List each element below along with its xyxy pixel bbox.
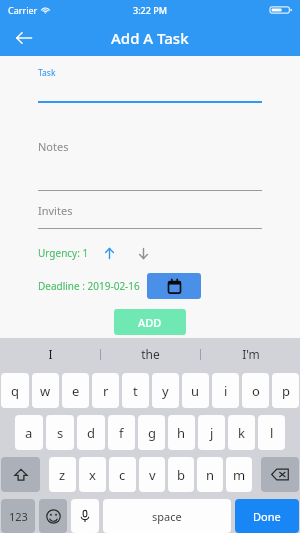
- staticText: Invites: [38, 203, 73, 218]
- staticText: Task: [38, 67, 56, 79]
- staticText: 123: [9, 509, 28, 524]
- staticText: f: [119, 424, 124, 442]
- staticText: I: [48, 346, 53, 362]
- staticText: i: [224, 382, 228, 400]
- button[interactable]: r: [92, 373, 119, 408]
- staticText: g: [148, 424, 156, 442]
- button[interactable]: n: [197, 457, 223, 492]
- button[interactable]: Back: [6, 20, 42, 56]
- staticText: p: [282, 382, 290, 400]
- button[interactable]: a: [15, 415, 43, 450]
- button[interactable]: 123: [1, 499, 35, 533]
- staticText: Add A Task: [111, 28, 189, 48]
- button[interactable]: I'm: [201, 338, 300, 370]
- staticText: Carrier: [8, 4, 38, 16]
- staticText: w: [40, 382, 51, 400]
- staticText: Deadline : 2019-02-16: [38, 279, 140, 293]
- button[interactable]: g: [138, 415, 165, 450]
- button[interactable]: Voice input: [71, 499, 99, 533]
- staticText: h: [177, 424, 186, 442]
- button[interactable]: s: [46, 415, 74, 450]
- staticText: z: [59, 466, 66, 484]
- button[interactable]: t: [122, 373, 149, 408]
- button[interactable]: j: [198, 415, 225, 450]
- staticText: o: [252, 382, 260, 400]
- button[interactable]: ADD: [114, 309, 186, 335]
- button[interactable]: Backspace: [261, 457, 299, 492]
- button[interactable]: m: [226, 457, 252, 492]
- button[interactable]: Decrease urgency: [133, 243, 153, 263]
- button[interactable]: f: [108, 415, 135, 450]
- button[interactable]: y: [152, 373, 179, 408]
- staticText: x: [89, 466, 96, 484]
- staticText: ADD: [138, 315, 162, 330]
- button[interactable]: Emoji: [39, 499, 67, 533]
- staticText: Notes: [38, 139, 69, 154]
- button[interactable]: c: [109, 457, 136, 492]
- button[interactable]: p: [272, 373, 299, 408]
- staticText: n: [206, 466, 215, 484]
- staticText: k: [238, 424, 245, 442]
- staticText: Urgency: 1: [38, 246, 89, 260]
- staticText: a: [25, 424, 33, 442]
- button[interactable]: Done: [235, 499, 299, 533]
- button[interactable]: w: [32, 373, 59, 408]
- button[interactable]: space: [103, 499, 231, 533]
- staticText: d: [87, 424, 95, 442]
- button[interactable]: Increase urgency: [99, 243, 119, 263]
- button[interactable]: I: [0, 338, 100, 370]
- staticText: c: [119, 466, 126, 484]
- staticText: the: [141, 346, 160, 362]
- staticText: v: [149, 466, 156, 484]
- button[interactable]: d: [77, 415, 105, 450]
- staticText: q: [11, 382, 19, 400]
- staticText: y: [162, 382, 169, 400]
- staticText: b: [177, 466, 185, 484]
- button[interactable]: h: [168, 415, 195, 450]
- button[interactable]: Pick deadline date: [147, 273, 201, 299]
- button[interactable]: Shift: [1, 457, 40, 492]
- button[interactable]: e: [62, 373, 89, 408]
- button[interactable]: o: [242, 373, 269, 408]
- staticText: j: [210, 424, 214, 442]
- button[interactable]: i: [212, 373, 239, 408]
- staticText: m: [233, 466, 246, 484]
- button[interactable]: v: [139, 457, 165, 492]
- staticText: s: [57, 424, 64, 442]
- button[interactable]: the: [101, 338, 200, 370]
- button[interactable]: x: [79, 457, 106, 492]
- staticText: e: [72, 382, 80, 400]
- button[interactable]: q: [1, 373, 29, 408]
- button[interactable]: u: [182, 373, 209, 408]
- staticText: u: [191, 382, 200, 400]
- staticText: l: [270, 424, 274, 442]
- staticText: I'm: [242, 346, 260, 362]
- staticText: 3:22 PM: [133, 4, 167, 16]
- button[interactable]: l: [258, 415, 285, 450]
- staticText: t: [133, 382, 138, 400]
- staticText: Done: [253, 509, 281, 524]
- staticText: space: [152, 509, 182, 524]
- staticText: r: [103, 382, 109, 400]
- button[interactable]: k: [228, 415, 255, 450]
- button[interactable]: b: [168, 457, 194, 492]
- button[interactable]: z: [49, 457, 76, 492]
